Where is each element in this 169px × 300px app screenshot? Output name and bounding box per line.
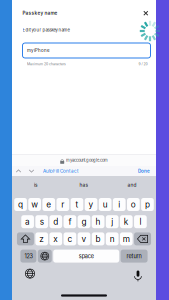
button[interactable]: Switch keyboard <box>38 250 52 263</box>
staticText: 9 / 20 <box>138 62 147 66</box>
button[interactable]: a <box>21 215 34 228</box>
staticText: d <box>53 217 58 227</box>
button[interactable]: Emoji keyboard <box>18 264 42 284</box>
staticText: j <box>111 217 113 227</box>
button[interactable]: Dictation <box>126 264 150 284</box>
staticText: and <box>127 182 136 188</box>
staticText: Edit your passkey name <box>22 27 69 33</box>
button[interactable]: and <box>108 176 156 194</box>
staticText: s <box>40 217 44 227</box>
staticText: 123 <box>24 253 32 259</box>
staticText: u <box>103 199 108 209</box>
staticText: g <box>81 217 86 227</box>
button[interactable]: space <box>53 250 119 263</box>
staticText: Done <box>138 168 150 174</box>
staticText: p <box>145 199 150 209</box>
button[interactable]: j <box>106 215 118 228</box>
button[interactable]: Next field <box>25 166 38 176</box>
staticText: Maximum 20 characters <box>27 62 66 66</box>
button[interactable]: Shift <box>17 232 34 245</box>
button[interactable]: t <box>71 198 83 211</box>
button[interactable]: z <box>35 232 48 245</box>
button[interactable]: return <box>121 250 148 263</box>
staticText: my iPhone <box>27 48 50 53</box>
staticText: z <box>39 234 44 244</box>
button[interactable]: c <box>64 232 76 245</box>
staticText: n <box>110 234 115 244</box>
staticText: t <box>75 199 78 209</box>
button[interactable]: Previous field <box>12 166 25 176</box>
staticText: y <box>88 199 93 209</box>
button[interactable]: o <box>127 198 140 211</box>
staticText: return <box>127 253 142 259</box>
staticText: q <box>18 199 23 209</box>
staticText: c <box>67 234 72 244</box>
button[interactable]: n <box>106 232 118 245</box>
button[interactable]: Done <box>138 166 156 176</box>
button[interactable]: has <box>60 176 108 194</box>
button[interactable]: l <box>134 215 147 228</box>
staticText: has <box>79 182 88 188</box>
button[interactable]: y <box>85 198 97 211</box>
button[interactable]: Delete <box>134 232 151 245</box>
staticText: b <box>96 234 101 244</box>
staticText: m <box>123 234 130 244</box>
button[interactable]: s <box>35 215 48 228</box>
staticText: i <box>118 199 120 209</box>
staticText: h <box>96 217 101 227</box>
staticText: AutoFill Contact <box>43 168 78 174</box>
staticText: f <box>68 217 71 227</box>
button[interactable]: g <box>78 215 90 228</box>
button[interactable]: v <box>78 232 90 245</box>
staticText: is <box>34 182 38 188</box>
button[interactable]: 123 <box>20 250 36 263</box>
staticText: o <box>131 199 136 209</box>
staticText: k <box>124 217 129 227</box>
button[interactable]: r <box>56 198 69 211</box>
staticText: r <box>61 199 64 209</box>
button[interactable]: x <box>49 232 62 245</box>
staticText: Passkey name <box>22 10 57 16</box>
button[interactable]: b <box>92 232 104 245</box>
button[interactable]: m <box>120 232 133 245</box>
staticText: myaccount.google.com <box>66 158 108 163</box>
staticText: v <box>81 234 86 244</box>
staticText: a <box>25 217 30 227</box>
button[interactable]: p <box>141 198 154 211</box>
button[interactable]: w <box>28 198 41 211</box>
staticText: l <box>139 217 141 227</box>
button[interactable]: d <box>49 215 62 228</box>
staticText: space <box>79 253 94 259</box>
button[interactable]: h <box>92 215 104 228</box>
button[interactable]: AutoFill Contact <box>38 166 78 176</box>
button[interactable]: k <box>120 215 133 228</box>
button[interactable]: is <box>12 176 60 194</box>
staticText: x <box>53 234 58 244</box>
staticText: e <box>46 199 51 209</box>
button[interactable]: e <box>42 198 55 211</box>
button[interactable]: q <box>14 198 27 211</box>
staticText: w <box>31 199 38 209</box>
button[interactable]: u <box>99 198 111 211</box>
button[interactable]: f <box>63 215 76 228</box>
button[interactable]: i <box>113 198 126 211</box>
